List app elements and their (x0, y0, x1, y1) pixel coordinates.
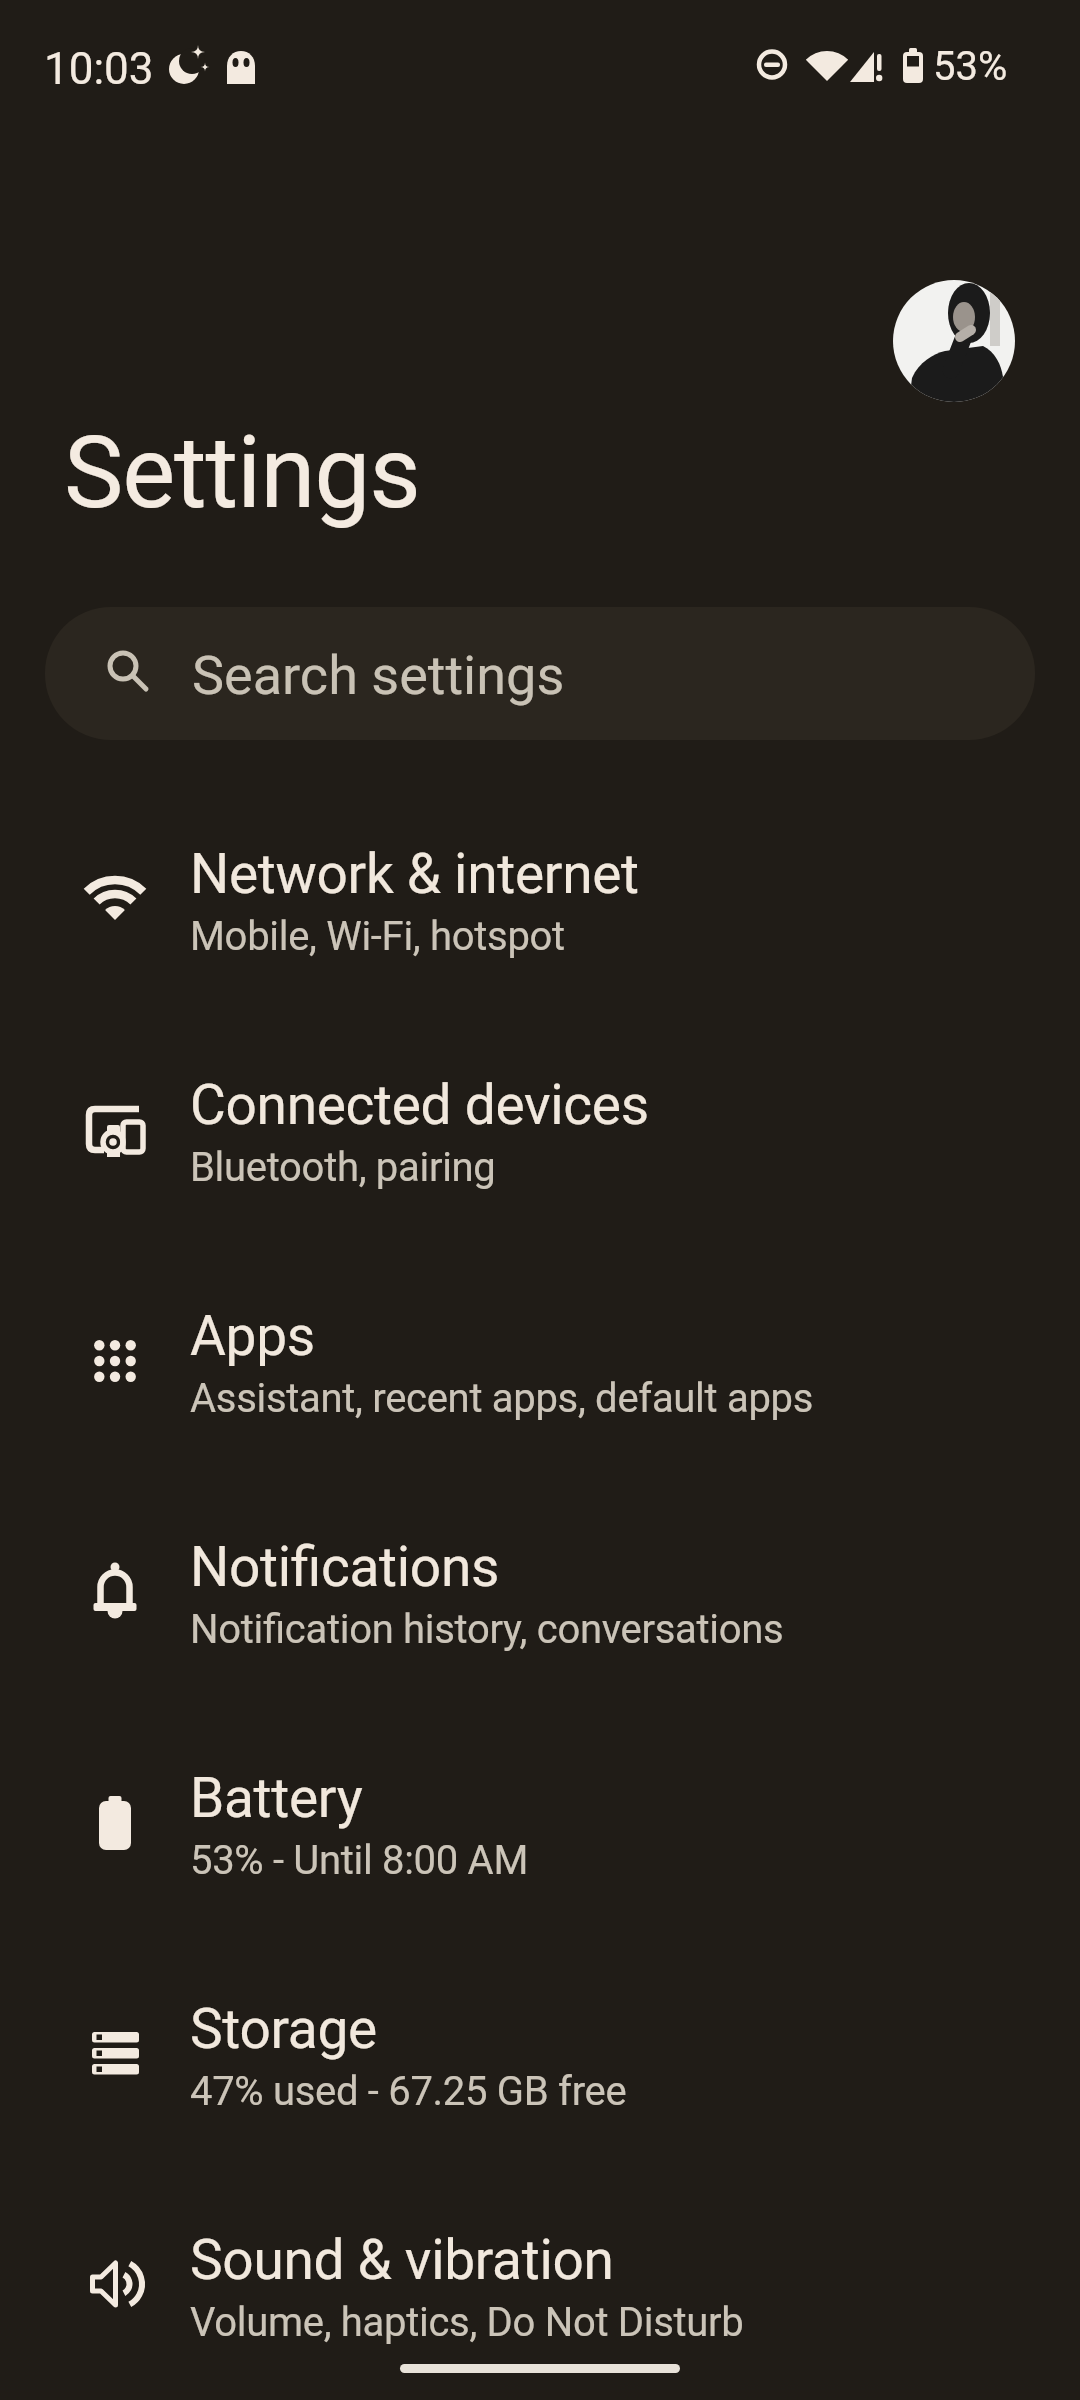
button[interactable] (0, 1245, 1080, 1476)
staticText: 53% - Until 8:00 AM (190, 1837, 529, 1884)
staticText: Apps (190, 1304, 315, 1368)
staticText: Battery (190, 1766, 363, 1830)
staticText: 10:03 (44, 43, 154, 95)
button[interactable] (0, 2169, 1080, 2400)
staticText: Search settings (192, 644, 565, 707)
staticText: Notification history, conversations (190, 1606, 784, 1653)
staticText: Bluetooth, pairing (190, 1144, 496, 1191)
staticText: Network & internet (190, 842, 639, 906)
button[interactable] (45, 607, 1035, 740)
button[interactable] (0, 1938, 1080, 2169)
staticText: 53% (933, 43, 1008, 90)
button[interactable] (0, 1476, 1080, 1707)
staticText: Sound & vibration (190, 2228, 614, 2292)
button[interactable] (0, 783, 1080, 1014)
staticText: Assistant, recent apps, default apps (190, 1375, 814, 1422)
button[interactable] (0, 1014, 1080, 1245)
staticText: Mobile, Wi-Fi, hotspot (190, 913, 565, 960)
button[interactable] (893, 280, 1015, 402)
button[interactable] (0, 1707, 1080, 1938)
staticText: Storage (190, 1997, 377, 2061)
staticText: 47% used - 67.25 GB free (190, 2068, 627, 2115)
staticText: Notifications (190, 1535, 500, 1599)
staticText: Settings (64, 414, 420, 531)
staticText: Volume, haptics, Do Not Disturb (190, 2299, 744, 2346)
staticText: Connected devices (190, 1073, 649, 1137)
